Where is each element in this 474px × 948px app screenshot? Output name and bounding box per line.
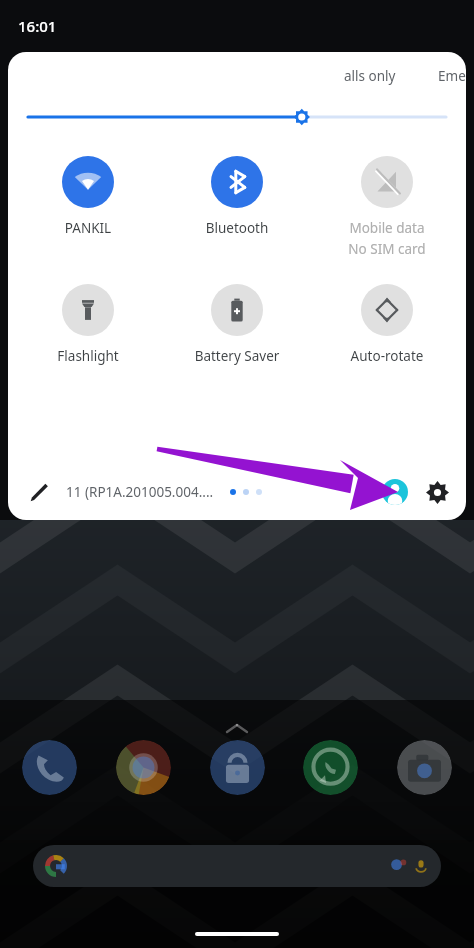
staticText: 11 (RP1A.201005.004....	[66, 483, 214, 501]
button[interactable]: PANKIL	[18, 156, 158, 237]
staticText: PANKIL	[18, 219, 158, 237]
staticText: Battery Saver	[167, 347, 307, 365]
staticText: 16:01	[18, 16, 57, 36]
staticText: No SIM card	[317, 240, 457, 258]
button[interactable]: Brightness	[8, 100, 466, 134]
staticText: Flashlight	[18, 347, 158, 365]
button[interactable]: Search	[33, 845, 441, 887]
staticText: Bluetooth	[167, 219, 307, 237]
button[interactable]: Battery Saver	[167, 284, 307, 365]
button[interactable]: User account	[382, 479, 408, 505]
button[interactable]: Chrome	[116, 740, 171, 795]
button[interactable]: Camera	[397, 740, 452, 795]
button[interactable]: WhatsApp	[303, 740, 358, 795]
button[interactable]: Mobile data	[317, 156, 457, 258]
button[interactable]: Phone	[22, 740, 77, 795]
staticText: alls only	[344, 67, 396, 85]
button[interactable]: Edit tiles	[22, 475, 56, 509]
button[interactable]: Auto-rotate	[317, 284, 457, 365]
button[interactable]: Flashlight	[18, 284, 158, 365]
button[interactable]: Bluetooth	[167, 156, 307, 237]
staticText: Auto-rotate	[317, 347, 457, 365]
staticText: Eme	[438, 67, 466, 85]
button[interactable]: Settings	[420, 475, 454, 509]
staticText: Mobile data	[317, 219, 457, 237]
button[interactable]: Lock	[210, 740, 265, 795]
